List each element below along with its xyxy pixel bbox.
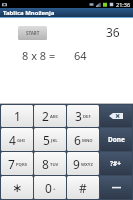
- staticText: 8: [42, 156, 49, 172]
- button[interactable]: ∗: [1, 176, 33, 199]
- staticText: 3: [75, 108, 82, 124]
- button[interactable]: #: [67, 176, 99, 199]
- button[interactable]: Tablica Množenja: [0, 8, 133, 18]
- staticText: 8 x 8 =: [22, 48, 56, 63]
- staticText: Done: [108, 135, 125, 144]
- button[interactable]: Backspace: [100, 105, 132, 127]
- staticText: 21:36: [116, 1, 131, 8]
- staticText: ?#+: [110, 159, 122, 168]
- button[interactable]: Symbols: [100, 152, 132, 175]
- staticText: +: [53, 186, 56, 192]
- button[interactable]: 1: [1, 105, 33, 127]
- staticText: TUV: [50, 162, 59, 168]
- staticText: WXYZ: [81, 162, 93, 168]
- staticText: 9: [73, 156, 80, 172]
- staticText: Tablica Množenja: [3, 9, 55, 17]
- staticText: ABC: [50, 114, 59, 120]
- staticText: 1: [14, 108, 21, 124]
- staticText: JKL: [51, 138, 58, 144]
- staticText: MNO: [82, 138, 93, 144]
- staticText: 6: [74, 132, 81, 148]
- staticText: 64: [74, 48, 87, 63]
- staticText: DEF: [83, 114, 91, 120]
- button[interactable]: START: [18, 26, 47, 40]
- staticText: START: [26, 30, 40, 36]
- button[interactable]: 7: [1, 152, 33, 175]
- staticText: 4: [9, 132, 16, 148]
- button[interactable]: 4: [1, 128, 33, 151]
- staticText: 5: [43, 132, 50, 148]
- button[interactable]: Done: [100, 128, 132, 151]
- button[interactable]: 5: [34, 128, 66, 151]
- button[interactable]: 8: [34, 152, 66, 175]
- button[interactable]: 2: [34, 105, 66, 127]
- staticText: 36: [106, 24, 120, 40]
- staticText: PQRS: [16, 162, 27, 168]
- button[interactable]: Dash: [100, 176, 132, 199]
- button[interactable]: 0: [34, 176, 66, 199]
- button[interactable]: 6: [67, 128, 99, 151]
- staticText: 2: [42, 108, 49, 124]
- staticText: GHI: [17, 138, 25, 144]
- staticText: #: [79, 180, 87, 196]
- button[interactable]: 9: [67, 152, 99, 175]
- staticText: 0: [45, 180, 52, 196]
- staticText: ∗: [12, 181, 23, 195]
- button[interactable]: 3: [67, 105, 99, 127]
- staticText: 7: [8, 156, 15, 172]
